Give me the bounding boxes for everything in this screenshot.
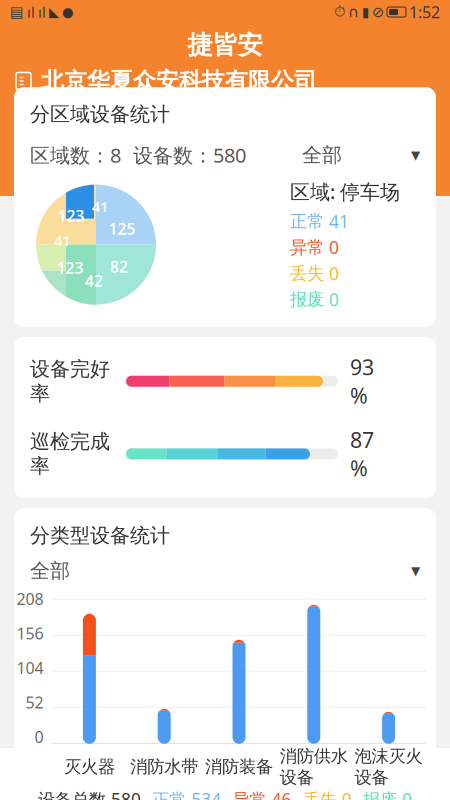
staticText: 104 [16, 657, 43, 678]
staticText: 灭火器 [64, 756, 115, 777]
staticText: ıl [27, 2, 35, 22]
staticText: ⏱ [334, 5, 345, 19]
staticText: 捷皆安 [187, 29, 262, 60]
staticText: 82 [110, 256, 128, 277]
staticText: 异常 [290, 237, 324, 258]
staticText: 0 [329, 236, 339, 259]
staticText: 首页 [30, 777, 60, 795]
staticText: 1:52 [409, 1, 440, 23]
staticText: 设备总数 580 [38, 788, 141, 800]
staticText: 41 [329, 210, 349, 233]
staticText: 0 [329, 262, 339, 285]
staticText: 工作 [120, 777, 150, 795]
staticText: 异常 46 [232, 788, 291, 800]
staticText: 设备完好率 [30, 357, 110, 406]
staticText: 全部 [30, 558, 70, 583]
staticText: 208 [16, 588, 43, 609]
button[interactable]: 全部 [14, 558, 436, 584]
button[interactable]: 全部 [302, 143, 420, 167]
staticText: 93% [350, 353, 374, 410]
staticText: 125 [108, 218, 135, 239]
staticText: ıl [38, 2, 46, 22]
staticText: 区域数：8 [30, 142, 121, 168]
staticText: 北京华夏众安科技有限公司 [41, 67, 317, 95]
staticText: 丢失 [290, 263, 324, 284]
staticText: 正常 [290, 211, 324, 232]
staticText: 区域: 停车场 [290, 178, 400, 205]
staticText: 消防装备 [205, 756, 273, 777]
staticText: 42 [85, 270, 103, 291]
staticText: 41 [92, 197, 108, 216]
staticText: 正常 534 [152, 788, 221, 800]
staticText: 分区域设备统计 [30, 102, 170, 127]
staticText: 52 [25, 692, 43, 713]
staticText: 发现 [300, 777, 330, 795]
staticText: 扫码 [210, 777, 240, 795]
staticText: 123 [56, 257, 83, 278]
staticText: 0 [34, 726, 43, 747]
staticText: 丢失 0 [303, 788, 352, 800]
staticText: 123 [57, 205, 84, 226]
staticText: 全部 [302, 143, 342, 167]
staticText: 0 [329, 288, 339, 311]
staticText: ∩ [348, 4, 359, 20]
staticText: ▮ [362, 4, 369, 19]
staticText: 消防水带 [130, 756, 198, 777]
button[interactable]: 工作 [90, 748, 180, 800]
staticText: 设备数：580 [133, 142, 246, 168]
button[interactable]: 扫码 [180, 748, 270, 800]
staticText: 巡检完成率 [30, 429, 110, 478]
staticText: 分类型设备统计 [30, 523, 170, 548]
button[interactable]: 我的 [360, 748, 450, 800]
staticText: ▼ [411, 148, 420, 162]
button[interactable]: 首页 [0, 748, 90, 800]
staticText: 消防供水 设备 [280, 745, 348, 788]
staticText: 41 [54, 231, 70, 250]
staticText: ⊘ [372, 4, 384, 20]
staticText: 87% [350, 426, 374, 482]
staticText: 报废 [290, 289, 324, 310]
staticText: 泡沫灭火 设备 [355, 745, 423, 788]
staticText: 156 [16, 623, 43, 644]
staticText: ● [62, 4, 74, 19]
staticText: ◣ [49, 4, 59, 19]
staticText: 报废 0 [363, 788, 412, 800]
staticText: ▼ [411, 564, 420, 578]
staticText: 我的 [390, 777, 420, 795]
staticText: ▤ [10, 4, 24, 20]
button[interactable]: 发现 [270, 748, 360, 800]
